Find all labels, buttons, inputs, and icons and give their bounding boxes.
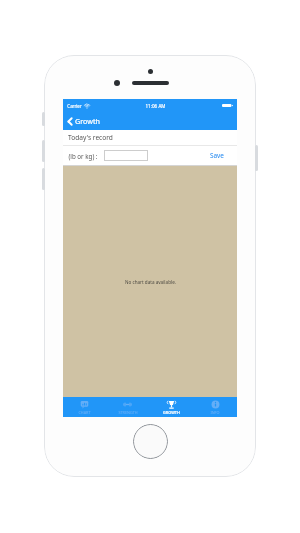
- staticText: 11:06 AM: [145, 103, 166, 109]
- staticText: Carrier: [67, 103, 82, 109]
- staticText: (lb or kg) :: [68, 152, 98, 160]
- staticText: GROWTH: [163, 410, 180, 415]
- staticText: Save: [210, 151, 224, 160]
- staticText: STRENGTH: [118, 410, 138, 415]
- button[interactable]: INFO: [193, 397, 237, 417]
- staticText: Growth: [75, 116, 100, 126]
- staticText: INFO: [210, 410, 220, 415]
- staticText: CHART: [78, 410, 91, 415]
- button[interactable]: Growth: [63, 114, 106, 128]
- button[interactable]: Save: [207, 150, 227, 161]
- staticText: Today's record: [68, 133, 113, 142]
- button[interactable]: GROWTH: [149, 397, 193, 417]
- button[interactable]: [104, 150, 148, 161]
- button[interactable]: STRENGTH: [106, 397, 149, 417]
- staticText: No chart data available.: [125, 279, 176, 285]
- button[interactable]: CHART: [63, 397, 106, 417]
